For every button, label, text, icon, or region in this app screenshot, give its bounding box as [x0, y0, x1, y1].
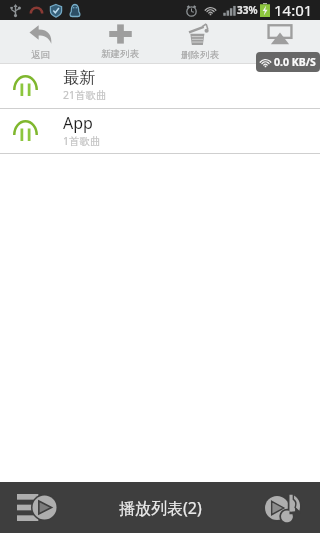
staticText: 删除列表 [181, 49, 219, 61]
button[interactable]: 删除列表 [160, 20, 240, 63]
staticText: 33% [237, 3, 258, 17]
button[interactable]: 返回 [0, 20, 80, 63]
staticText: App [63, 112, 93, 134]
button[interactable]: Playlist [0, 482, 75, 533]
staticText: 新建列表 [101, 48, 139, 60]
staticText: 返回 [31, 49, 50, 61]
button[interactable]: 新建列表 [80, 20, 160, 63]
button[interactable]: 最新 [0, 64, 320, 109]
button[interactable]: App [0, 109, 320, 154]
staticText: 播放列表(2) [119, 497, 202, 519]
button[interactable]: Cast [240, 20, 320, 63]
button[interactable]: Network speed [256, 52, 320, 72]
staticText: 0.0 KB/S [274, 55, 316, 69]
staticText: 1首歌曲 [63, 134, 101, 148]
button[interactable]: Now playing [245, 482, 320, 533]
staticText: 最新 [63, 68, 95, 88]
staticText: 14:01 [274, 0, 313, 20]
staticText: 21首歌曲 [63, 88, 107, 102]
